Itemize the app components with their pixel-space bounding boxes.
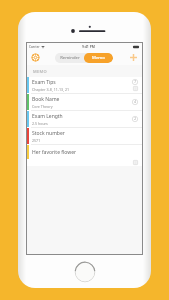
staticText: 4 (134, 100, 136, 104)
button[interactable]: Reminder (55, 53, 84, 63)
staticText: Core Theory (32, 104, 53, 109)
staticText: Her favorite flower (32, 149, 77, 156)
button[interactable]: Exam Length (27, 111, 142, 127)
staticText: 2 (134, 117, 136, 121)
staticText: Chapter 3-8, 11-13, 21 (32, 87, 70, 92)
staticText: Stock number (32, 130, 65, 137)
staticText: 2.5 hours (32, 121, 48, 126)
staticText: Reminder (60, 55, 80, 61)
staticText: Carrier (29, 45, 40, 49)
staticText: Exam Tips (32, 79, 56, 86)
button[interactable]: Memo (84, 53, 113, 63)
staticText: Exam Length (32, 113, 63, 120)
button[interactable]: Add memo (128, 52, 139, 63)
staticText: 9:41 PM (82, 44, 95, 49)
button[interactable]: Stock number (27, 128, 142, 144)
button[interactable]: Her favorite flower (27, 145, 142, 159)
staticText: 2571 (32, 138, 41, 143)
button[interactable]: Book Name (27, 94, 142, 110)
button[interactable]: Exam Tips (27, 77, 142, 93)
staticText: MEMO (33, 69, 47, 74)
button[interactable]: Settings (30, 52, 41, 63)
staticText: Memo (92, 55, 105, 61)
staticText: 7 (134, 80, 136, 84)
staticText: Book Name (32, 96, 60, 103)
